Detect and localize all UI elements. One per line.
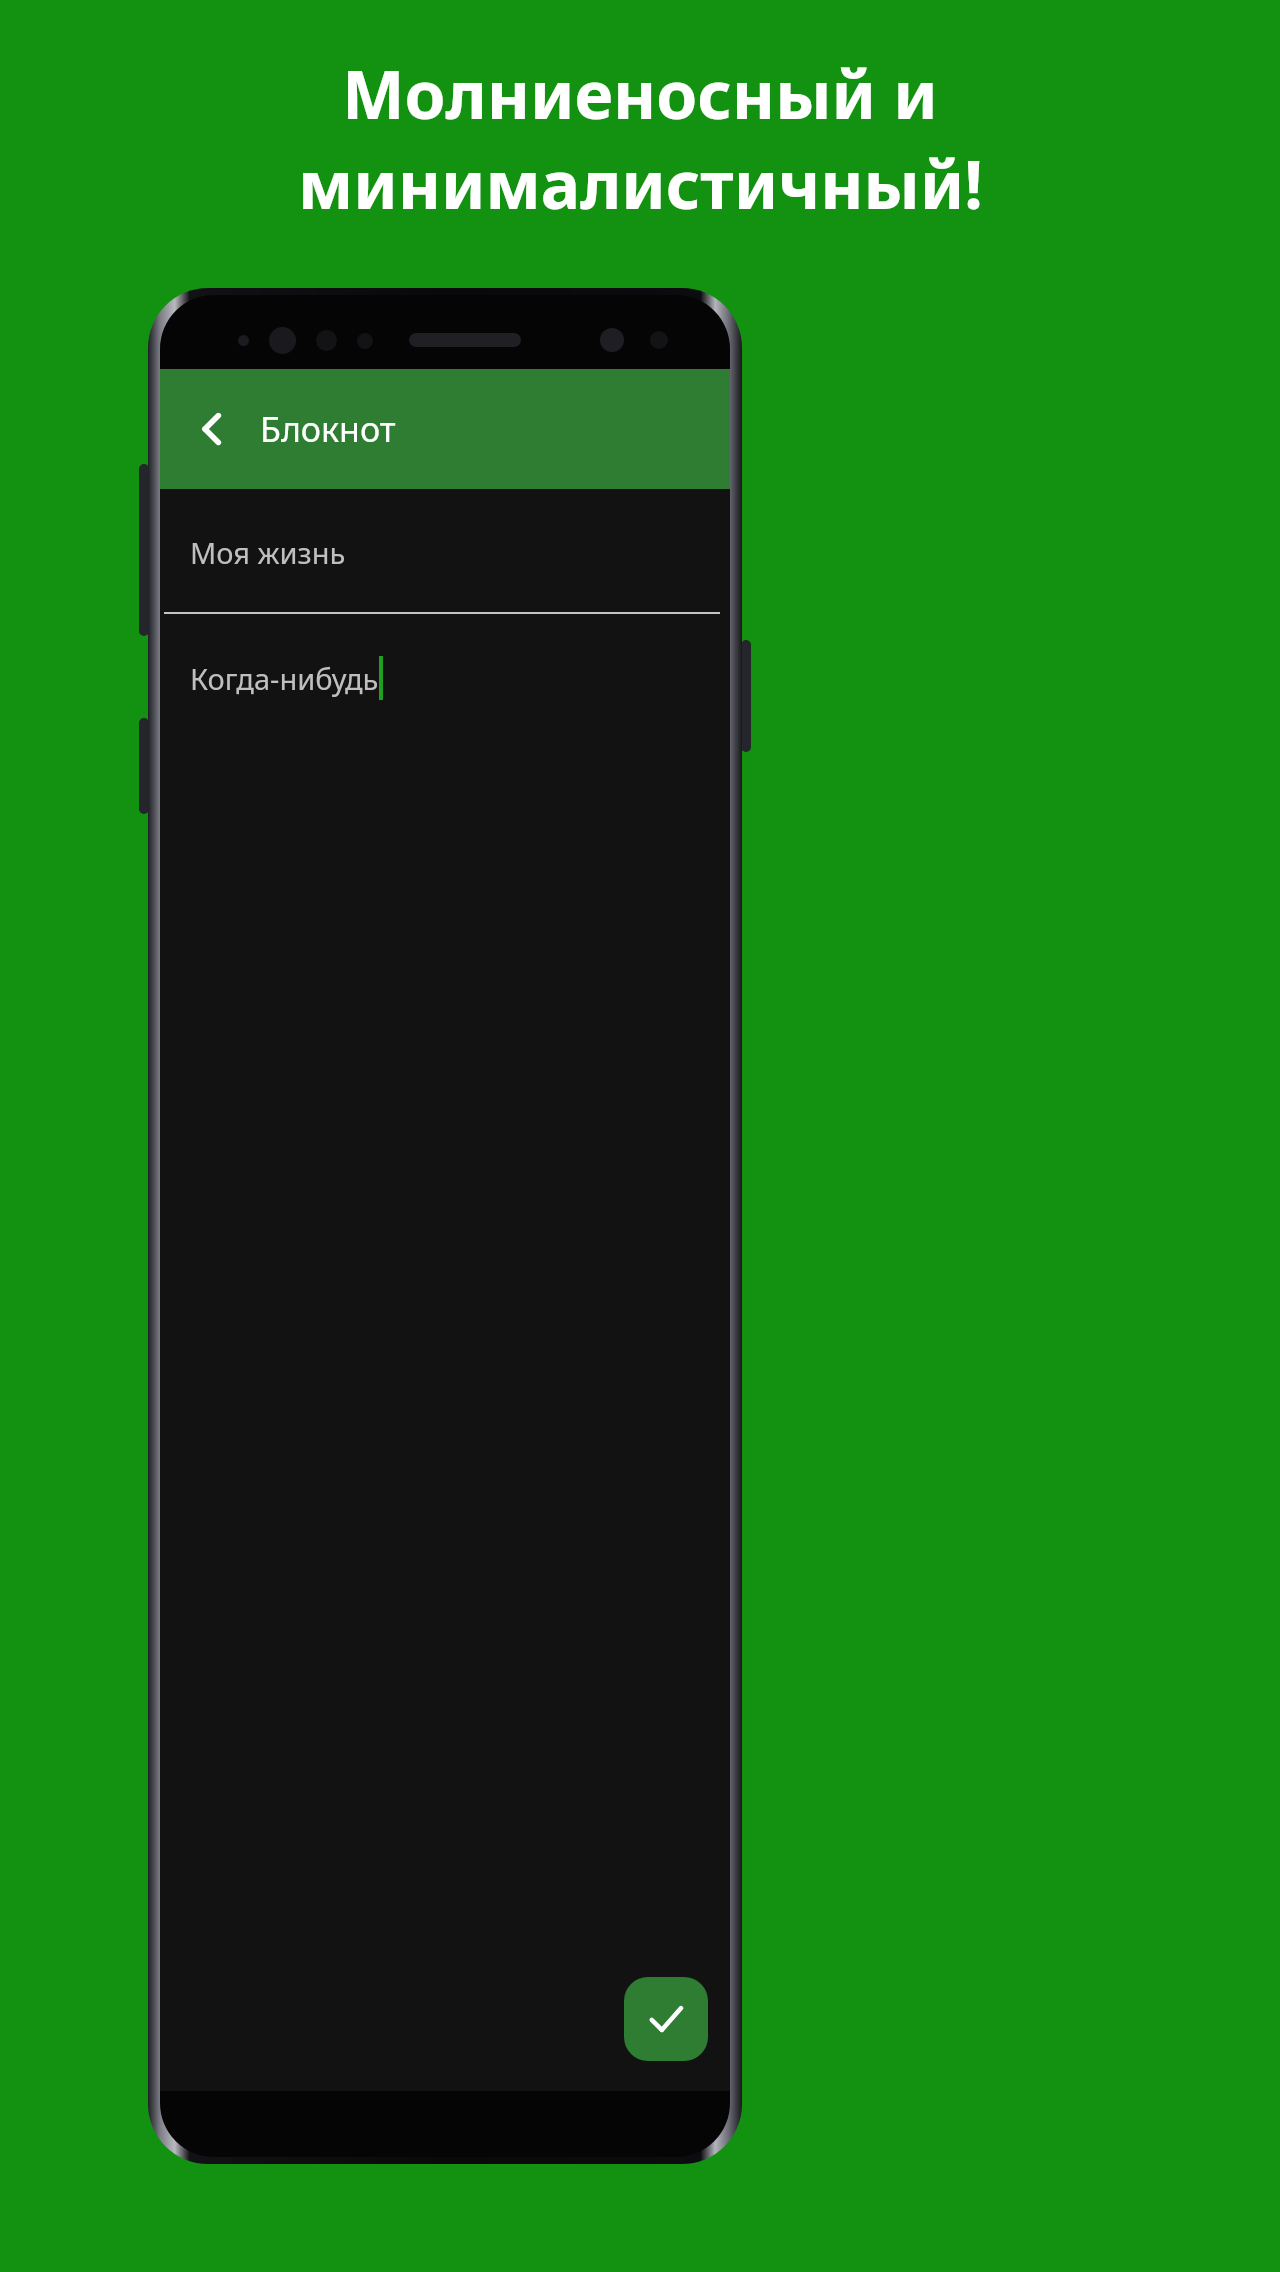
button[interactable]: Back xyxy=(160,369,730,489)
button[interactable]: Моя жизнь xyxy=(190,533,700,572)
button[interactable]: Back xyxy=(182,399,242,459)
staticText: Молниеносный и xyxy=(342,48,938,138)
button[interactable]: Save note xyxy=(624,1977,708,2061)
staticText: Когда-нибудь xyxy=(190,659,379,698)
staticText: Блокнот xyxy=(260,406,396,452)
button[interactable]: Когда-нибудь xyxy=(190,656,700,700)
staticText: Моя жизнь xyxy=(190,533,346,572)
staticText: минималистичный! xyxy=(298,138,983,228)
